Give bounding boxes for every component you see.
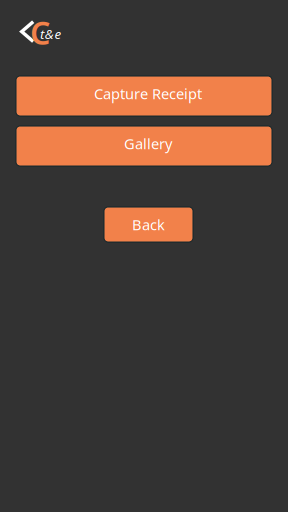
button[interactable]: Capture Receipt bbox=[16, 76, 272, 116]
staticText: C bbox=[30, 11, 50, 53]
button[interactable]: Back bbox=[0, 0, 62, 50]
staticText: Capture Receipt bbox=[94, 84, 202, 103]
staticText: Gallery bbox=[124, 134, 172, 153]
button[interactable]: Gallery bbox=[16, 126, 272, 166]
button[interactable]: Back bbox=[104, 207, 193, 242]
staticText: Back bbox=[132, 215, 165, 234]
staticText: t&e bbox=[40, 25, 62, 43]
